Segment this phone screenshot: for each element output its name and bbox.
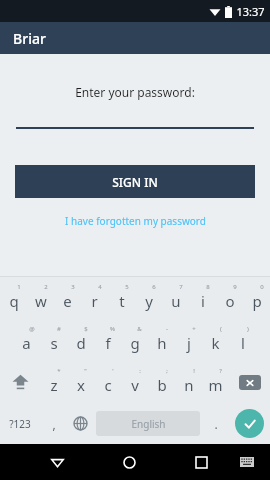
button[interactable]: # [40, 319, 67, 361]
button[interactable]: 8 [189, 277, 216, 319]
staticText: ' [112, 367, 114, 375]
staticText: d [76, 333, 86, 353]
button[interactable]: Keyboard [234, 449, 260, 475]
staticText: z [50, 375, 58, 395]
button[interactable]: 5 [108, 277, 135, 319]
button[interactable]: % [94, 319, 121, 361]
button[interactable]: . [202, 403, 229, 444]
button[interactable]: 0 [243, 277, 270, 319]
staticText: ) [247, 325, 249, 333]
staticText: Briar [13, 29, 46, 48]
staticText: ; [166, 367, 168, 375]
staticText: 1 [17, 283, 21, 291]
staticText: t [119, 291, 125, 311]
staticText: ?123 [9, 417, 31, 431]
button[interactable]: " [67, 361, 94, 403]
staticText: + [192, 325, 196, 333]
staticText: o [225, 291, 235, 311]
staticText: 9 [233, 283, 237, 291]
button[interactable]: ?123 [0, 403, 40, 444]
staticText: % [110, 325, 115, 333]
staticText: c [104, 375, 112, 395]
staticText: a [22, 333, 31, 353]
button[interactable]: 9 [216, 277, 243, 319]
button[interactable]: & [121, 319, 148, 361]
staticText: 6 [152, 283, 156, 291]
button[interactable]: Backspace [229, 361, 270, 403]
button[interactable]: - [148, 319, 175, 361]
staticText: l [241, 333, 245, 353]
staticText: English [131, 417, 166, 431]
button[interactable]: 2 [27, 277, 54, 319]
staticText: k [211, 333, 220, 353]
button[interactable]: 7 [162, 277, 189, 319]
staticText: & [137, 325, 142, 333]
button[interactable]: Recent apps [186, 447, 216, 477]
staticText: 2 [44, 283, 48, 291]
button[interactable]: : [121, 361, 148, 403]
staticText: : [139, 367, 141, 375]
staticText: y [145, 291, 153, 311]
staticText: w [35, 291, 47, 311]
button[interactable]: , [40, 403, 67, 444]
button[interactable]: ! [175, 361, 202, 403]
button[interactable]: Shift [0, 361, 40, 403]
button[interactable]: 3 [54, 277, 81, 319]
staticText: b [157, 375, 167, 395]
staticText: * [57, 367, 61, 375]
staticText: p [252, 291, 262, 311]
button[interactable]: SIGN IN [15, 165, 255, 198]
staticText: e [63, 291, 72, 311]
staticText: ( [220, 325, 222, 333]
staticText: $ [84, 325, 88, 333]
staticText: # [57, 325, 61, 333]
staticText: ! [193, 367, 195, 375]
button[interactable]: ? [202, 361, 229, 403]
staticText: f [105, 333, 111, 353]
button[interactable]: English [96, 411, 200, 436]
staticText: u [171, 291, 181, 311]
button[interactable]: Home [114, 447, 144, 477]
button[interactable]: Change language [67, 403, 94, 444]
staticText: n [184, 375, 194, 395]
staticText: g [130, 333, 140, 353]
staticText: 7 [179, 283, 183, 291]
staticText: r [91, 291, 98, 311]
staticText: j [187, 333, 191, 353]
staticText: , [52, 416, 56, 432]
staticText: q [9, 291, 19, 311]
staticText: s [50, 333, 58, 353]
button[interactable]: 1 [0, 277, 27, 319]
staticText: 5 [125, 283, 129, 291]
staticText: @ [29, 325, 35, 333]
button[interactable]: @ [13, 319, 40, 361]
button[interactable]: I have forgotten my password [57, 211, 214, 231]
staticText: x [77, 375, 85, 395]
staticText: . [214, 416, 218, 432]
button[interactable]: 4 [81, 277, 108, 319]
staticText: 13:37 [236, 4, 265, 19]
staticText: I have forgotten my password [65, 214, 206, 228]
staticText: " [84, 367, 87, 375]
staticText: i [201, 291, 205, 311]
staticText: 3 [71, 283, 75, 291]
button[interactable]: ( [202, 319, 229, 361]
button[interactable]: ) [229, 319, 256, 361]
button[interactable]: ; [148, 361, 175, 403]
staticText: 8 [206, 283, 210, 291]
staticText: 4 [98, 283, 102, 291]
staticText: - [166, 325, 168, 333]
button[interactable]: Back [42, 447, 72, 477]
staticText: SIGN IN [112, 174, 158, 190]
button[interactable]: + [175, 319, 202, 361]
staticText: v [131, 375, 139, 395]
button[interactable]: ' [94, 361, 121, 403]
button[interactable]: $ [67, 319, 94, 361]
button[interactable]: 6 [135, 277, 162, 319]
button[interactable]: * [40, 361, 67, 403]
staticText: 0 [260, 283, 264, 291]
staticText: Enter your password: [75, 84, 195, 100]
staticText: ? [219, 367, 222, 375]
button[interactable]: Enter [235, 409, 264, 438]
